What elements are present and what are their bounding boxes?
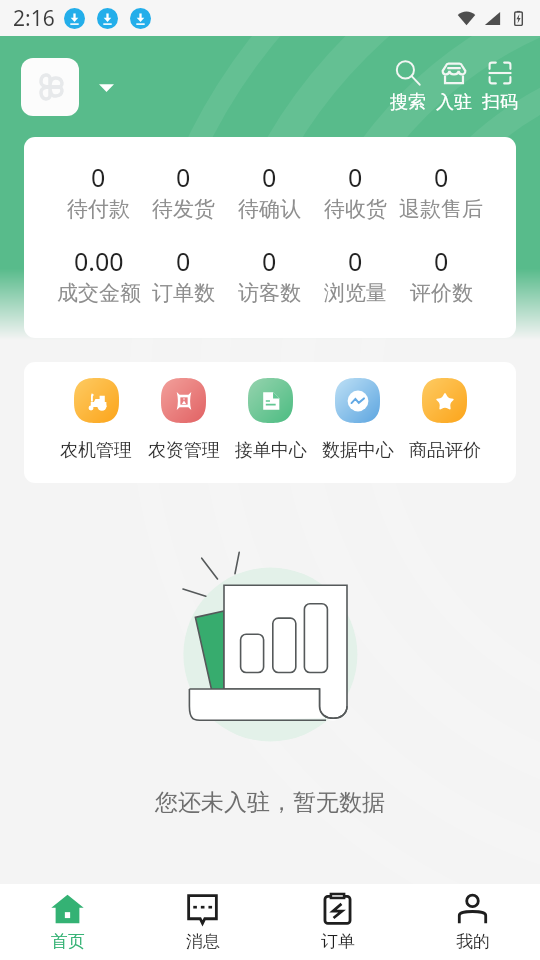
- button[interactable]: 接单中心: [227, 378, 314, 462]
- staticText: 2:16: [13, 4, 55, 33]
- button[interactable]: 0: [312, 160, 398, 222]
- staticText: 待付款: [67, 196, 130, 222]
- staticText: 0: [262, 244, 277, 278]
- staticText: 待收货: [324, 196, 387, 222]
- staticText: 0: [176, 160, 191, 194]
- staticText: 0: [176, 244, 191, 278]
- staticText: 首页: [51, 931, 85, 952]
- button[interactable]: 搜索: [390, 60, 426, 114]
- button[interactable]: 商品评价: [401, 378, 488, 462]
- staticText: 数据中心: [322, 439, 394, 462]
- staticText: 0: [434, 160, 449, 194]
- staticText: 农资管理: [148, 439, 220, 462]
- staticText: 0: [434, 244, 449, 278]
- button[interactable]: 0: [398, 244, 484, 306]
- staticText: 访客数: [238, 280, 301, 306]
- button[interactable]: 0: [141, 244, 226, 306]
- button[interactable]: 扫码: [482, 60, 518, 114]
- button[interactable]: 农机管理: [52, 378, 140, 462]
- button[interactable]: 数据中心: [314, 378, 401, 462]
- staticText: 扫码: [482, 91, 518, 114]
- staticText: 0: [91, 160, 106, 194]
- staticText: 商品评价: [409, 439, 481, 462]
- button[interactable]: 0: [56, 160, 141, 222]
- staticText: 您还未入驻，暂无数据: [155, 788, 385, 817]
- staticText: 0: [262, 160, 277, 194]
- staticText: 成交金额: [57, 280, 141, 306]
- staticText: 0: [348, 160, 363, 194]
- staticText: 0.00: [74, 244, 124, 278]
- button[interactable]: 入驻: [436, 60, 472, 114]
- button[interactable]: 0: [226, 160, 312, 222]
- staticText: 评价数: [410, 280, 473, 306]
- staticText: 搜索: [390, 91, 426, 114]
- staticText: 0: [348, 244, 363, 278]
- staticText: 接单中心: [235, 439, 307, 462]
- staticText: 待确认: [238, 196, 301, 222]
- button[interactable]: 0: [226, 244, 312, 306]
- button[interactable]: 首页: [0, 884, 135, 960]
- button[interactable]: 0: [141, 160, 226, 222]
- button[interactable]: 我的: [405, 884, 540, 960]
- button[interactable]: 农资管理: [140, 378, 227, 462]
- staticText: 入驻: [436, 91, 472, 114]
- staticText: 浏览量: [324, 280, 387, 306]
- staticText: 消息: [186, 931, 220, 952]
- staticText: 我的: [456, 931, 490, 952]
- button[interactable]: 消息: [135, 884, 270, 960]
- staticText: 退款售后: [399, 196, 483, 222]
- button[interactable]: 订单: [270, 884, 405, 960]
- button[interactable]: 0: [398, 160, 484, 222]
- staticText: 待发货: [152, 196, 215, 222]
- staticText: 农机管理: [60, 439, 132, 462]
- button[interactable]: 0.00: [56, 244, 141, 306]
- button[interactable]: 0: [312, 244, 398, 306]
- button[interactable]: 切换店铺: [93, 74, 119, 100]
- button[interactable]: 店铺 Logo: [21, 58, 79, 116]
- staticText: 订单: [321, 931, 355, 952]
- staticText: 订单数: [152, 280, 215, 306]
